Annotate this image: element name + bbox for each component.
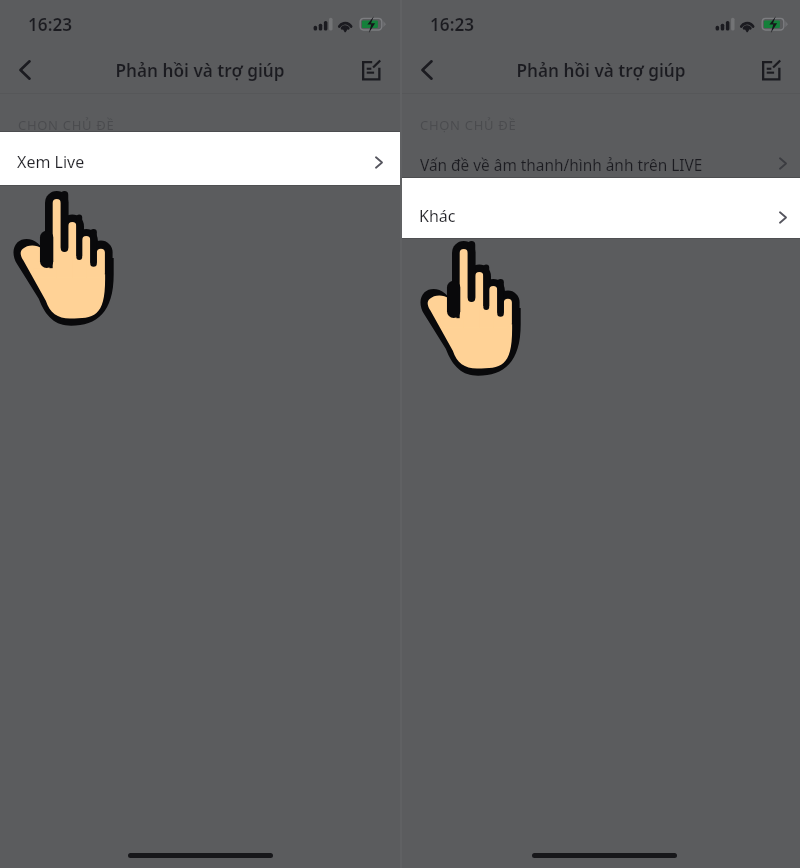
- staticText: Vấn đề về âm thanh/hình ảnh trên LIVE: [420, 155, 703, 176]
- staticText: Phản hồi và trợ giúp: [115, 59, 285, 82]
- button[interactable]: Vấn đề về âm thanh/hình ảnh trên LIVE: [402, 138, 800, 185]
- staticText: 16:23: [430, 13, 475, 36]
- button[interactable]: Back: [411, 54, 443, 86]
- staticText: Khác: [419, 205, 456, 227]
- button[interactable]: Write feedback: [357, 55, 389, 87]
- button[interactable]: Back: [9, 54, 41, 86]
- staticText: 16:23: [28, 13, 73, 36]
- staticText: CHỌN CHỦ ĐỀ: [420, 116, 517, 134]
- button[interactable]: Khác: [402, 178, 800, 238]
- button[interactable]: Xem Live: [0, 132, 400, 185]
- staticText: Phản hồi và trợ giúp: [516, 59, 686, 82]
- staticText: CHỌN CHỦ ĐỀ: [18, 116, 115, 134]
- button[interactable]: Write feedback: [757, 55, 789, 87]
- staticText: Xem Live: [17, 151, 85, 173]
